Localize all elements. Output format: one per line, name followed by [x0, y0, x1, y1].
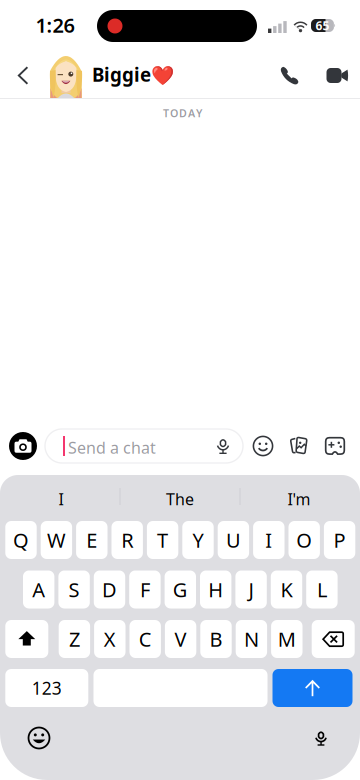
button[interactable]: W	[41, 521, 72, 559]
staticText: T	[157, 527, 168, 553]
staticText: 65	[315, 17, 329, 33]
button[interactable]: E	[76, 521, 107, 559]
staticText: U	[226, 527, 241, 553]
button[interactable]: Biggie❤️	[49, 52, 174, 99]
staticText: F	[140, 576, 150, 603]
staticText: D	[102, 576, 117, 603]
button[interactable]: I	[253, 521, 284, 559]
button[interactable]: D	[94, 570, 125, 608]
button[interactable]: J	[235, 570, 267, 608]
staticText: O	[296, 527, 312, 553]
staticText: Y	[192, 527, 203, 553]
staticText: B	[209, 626, 222, 652]
button[interactable]: X	[94, 620, 125, 658]
staticText: O	[170, 106, 178, 120]
staticText: N	[244, 626, 259, 652]
staticText: The	[166, 488, 194, 510]
staticText: Send a chat	[68, 437, 156, 458]
button[interactable]: Emoji	[248, 429, 278, 463]
button[interactable]: F	[129, 570, 161, 608]
button[interactable]: Emoji keyboard	[22, 721, 56, 755]
button[interactable]: K	[271, 570, 302, 608]
staticText: I	[58, 488, 63, 510]
staticText: I	[265, 527, 272, 553]
button[interactable]: Games	[320, 429, 350, 463]
staticText: W	[47, 527, 66, 553]
staticText: 123	[32, 676, 62, 699]
button[interactable]: I	[2, 481, 120, 517]
staticText: K	[280, 576, 292, 603]
staticText: V	[175, 626, 187, 652]
staticText: A	[188, 106, 195, 120]
staticText: S	[69, 576, 80, 603]
button[interactable]: B	[200, 620, 232, 658]
button[interactable]: 123	[5, 669, 88, 707]
button[interactable]: Q	[5, 521, 37, 559]
staticText: J	[249, 576, 254, 603]
button[interactable]: Y	[182, 521, 214, 559]
button[interactable]: T	[147, 521, 178, 559]
button[interactable]: Send	[272, 669, 352, 707]
button[interactable]: A	[23, 570, 54, 608]
staticText: I'm	[287, 488, 310, 510]
button[interactable]: Camera	[6, 429, 40, 463]
staticText: L	[317, 576, 327, 603]
button[interactable]: Z	[59, 620, 90, 658]
button[interactable]: S	[58, 570, 90, 608]
button[interactable]: L	[306, 570, 338, 608]
staticText: M	[278, 626, 296, 652]
staticText: R	[121, 527, 133, 553]
staticText: Z	[69, 626, 80, 652]
button[interactable]: C	[129, 620, 161, 658]
button[interactable]: Audio call	[270, 52, 310, 99]
button[interactable]: H	[200, 570, 231, 608]
staticText: Y	[196, 106, 202, 120]
button[interactable]: V	[165, 620, 196, 658]
button[interactable]: Delete	[312, 620, 355, 658]
button[interactable]: Dictate	[304, 721, 338, 755]
button[interactable]: O	[288, 521, 320, 559]
staticText: D	[179, 106, 187, 120]
button[interactable]: Video call	[314, 52, 354, 99]
staticText: H	[208, 576, 223, 603]
staticText: E	[86, 527, 97, 553]
button[interactable]: U	[218, 521, 249, 559]
staticText: Biggie❤️	[92, 62, 174, 87]
button[interactable]: P	[324, 521, 355, 559]
button[interactable]: G	[165, 570, 196, 608]
button[interactable]: N	[236, 620, 267, 658]
button[interactable]: Stickers	[284, 429, 314, 463]
staticText: T	[163, 106, 169, 120]
staticText: Q	[13, 527, 29, 553]
button[interactable]: The	[121, 481, 239, 517]
staticText: C	[139, 626, 152, 652]
staticText: G	[173, 576, 188, 603]
staticText: P	[334, 527, 346, 553]
staticText: 1:26	[35, 12, 74, 38]
button[interactable]: Send a chat	[45, 429, 243, 463]
button[interactable]: R	[111, 521, 143, 559]
staticText: A	[32, 576, 45, 603]
button[interactable]: Back	[2, 52, 44, 99]
button[interactable]: M	[271, 620, 302, 658]
button[interactable]: Shift	[5, 620, 48, 658]
staticText: X	[104, 626, 116, 652]
button[interactable]: I'm	[240, 481, 358, 517]
